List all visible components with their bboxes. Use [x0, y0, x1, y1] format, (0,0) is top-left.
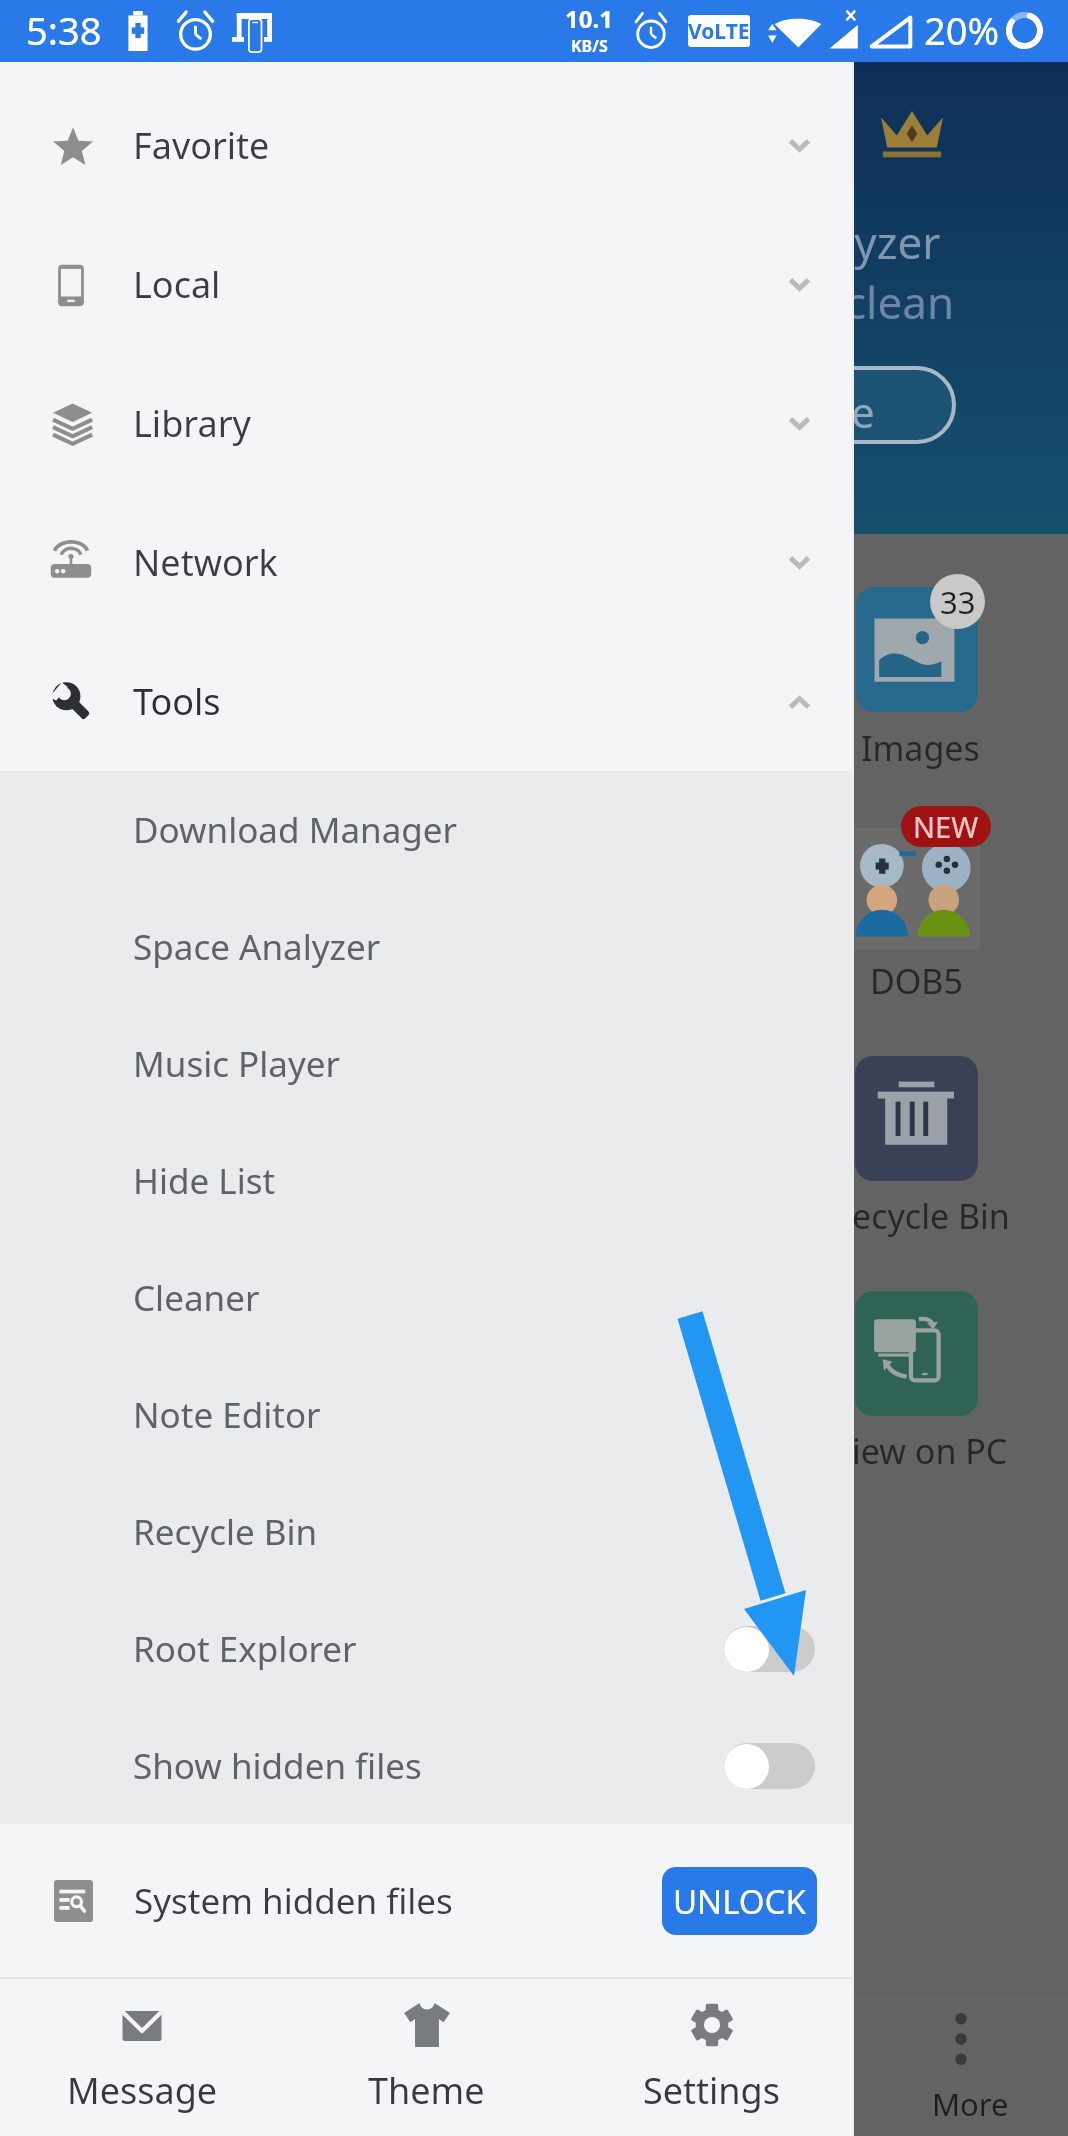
- staticText: Music Player: [133, 1040, 340, 1088]
- staticText: VoLTE: [688, 17, 750, 46]
- staticText: 5:38: [26, 4, 102, 56]
- button[interactable]: Download Manager: [0, 771, 854, 888]
- staticText: Library: [133, 399, 251, 448]
- button[interactable]: Hide List: [0, 1122, 854, 1239]
- staticText: Network: [133, 538, 278, 587]
- staticText: Hide List: [133, 1157, 276, 1205]
- staticText: Note Editor: [133, 1391, 321, 1439]
- staticText: 20%: [924, 4, 1000, 56]
- button[interactable]: Recycle Bin: [0, 1473, 854, 1590]
- staticText: System hidden files: [134, 1877, 453, 1925]
- staticText: 10.1: [565, 2, 613, 35]
- staticText: 33: [940, 581, 976, 623]
- button[interactable]: Library: [0, 354, 854, 493]
- staticText: Space Analyzer: [133, 923, 381, 971]
- staticText: e: [851, 383, 875, 440]
- staticText: Images: [861, 725, 980, 771]
- staticText: KB/S: [571, 35, 608, 57]
- staticText: Tools: [133, 677, 221, 726]
- staticText: Theme: [368, 2066, 485, 2115]
- staticText: Local: [133, 260, 221, 309]
- button[interactable]: Root Explorer: [0, 1590, 854, 1707]
- button[interactable]: UNLOCK: [662, 1867, 817, 1935]
- staticText: Download Manager: [133, 806, 457, 854]
- staticText: Root Explorer: [133, 1625, 357, 1673]
- button[interactable]: System hidden files: [0, 1824, 854, 1977]
- staticText: Message: [67, 2066, 218, 2115]
- button[interactable]: Space Analyzer: [0, 888, 854, 1005]
- staticText: lyzer: [843, 212, 941, 272]
- staticText: clean: [845, 272, 955, 332]
- staticText: ecycle Bin: [852, 1193, 1010, 1239]
- button[interactable]: Show hidden files: [0, 1707, 854, 1824]
- button[interactable]: Message: [0, 1979, 284, 2136]
- button[interactable]: Local: [0, 215, 854, 354]
- staticText: Cleaner: [133, 1274, 260, 1322]
- staticText: Show hidden files: [133, 1742, 422, 1790]
- staticText: iew on PC: [852, 1428, 1008, 1474]
- button[interactable]: Theme: [284, 1979, 569, 2136]
- button[interactable]: Network: [0, 493, 854, 632]
- staticText: NEW: [913, 807, 979, 846]
- button[interactable]: Tools: [0, 632, 854, 771]
- button[interactable]: Images: [856, 587, 978, 712]
- button[interactable]: More: [900, 1998, 1020, 2123]
- staticText: Favorite: [133, 121, 270, 170]
- button[interactable]: Settings: [569, 1979, 854, 2136]
- staticText: UNLOCK: [673, 1879, 806, 1924]
- staticText: DOB5: [870, 958, 963, 1004]
- button[interactable]: View on PC: [855, 1291, 978, 1416]
- button[interactable]: Cleaner: [0, 1239, 854, 1356]
- staticText: Settings: [643, 2066, 780, 2115]
- staticText: More: [932, 2083, 1009, 2125]
- button[interactable]: Music Player: [0, 1005, 854, 1122]
- button[interactable]: Favorite: [0, 76, 854, 215]
- button[interactable]: Recycle Bin: [855, 1056, 978, 1181]
- staticText: Recycle Bin: [133, 1508, 318, 1556]
- button[interactable]: Note Editor: [0, 1356, 854, 1473]
